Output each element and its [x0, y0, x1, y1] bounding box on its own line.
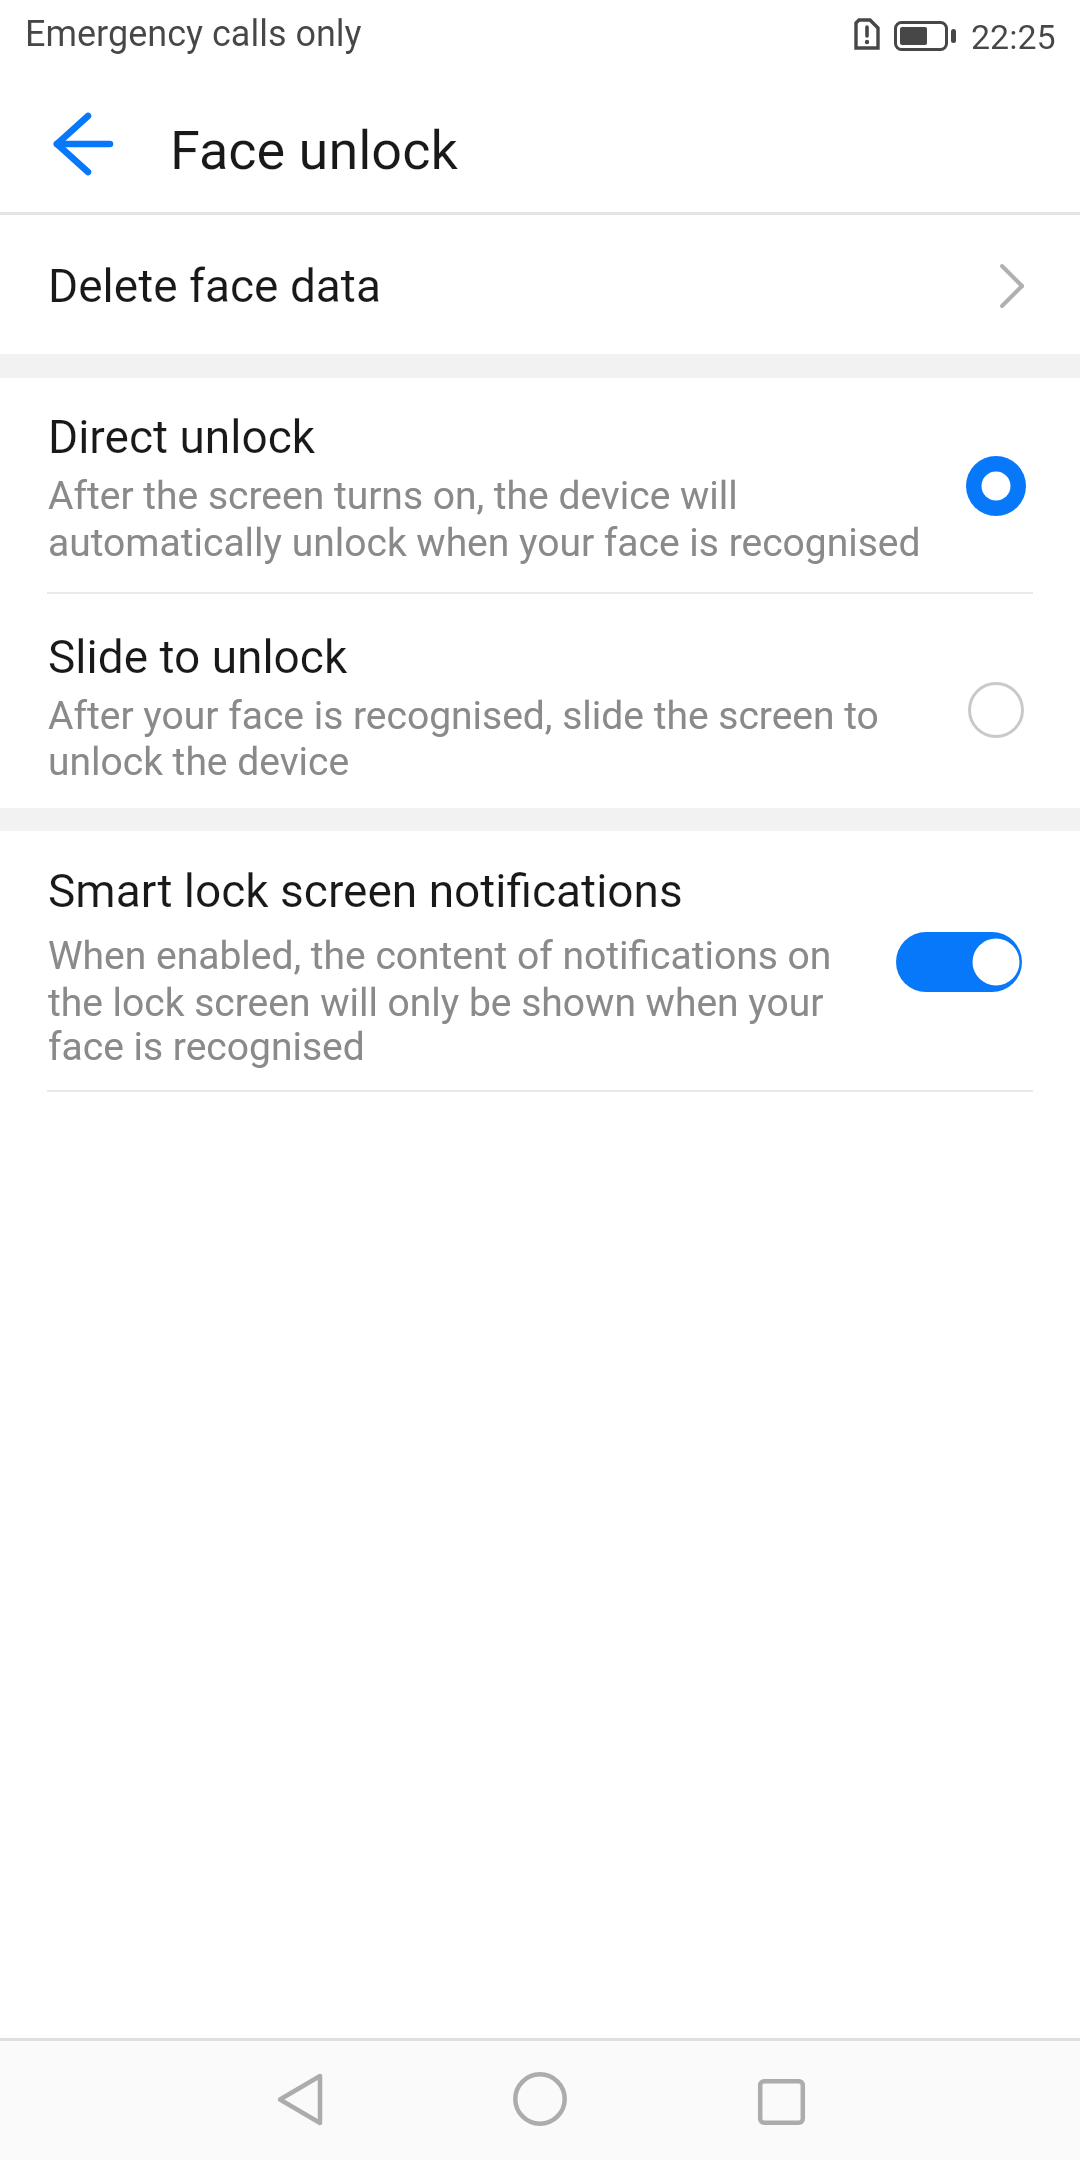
staticText: After the screen turns on, the device wi… — [48, 473, 738, 519]
staticText: Smart lock screen notifications — [48, 864, 683, 918]
staticText: face is recognised — [48, 1024, 365, 1070]
button[interactable]: Smart lock screen notifications — [0, 831, 1080, 1090]
staticText: unlock the device — [48, 739, 350, 785]
button[interactable] — [732, 2058, 832, 2138]
button[interactable]: Delete face data — [0, 215, 1080, 354]
staticText: Face unlock — [170, 119, 458, 182]
staticText: Slide to unlock — [48, 630, 348, 684]
staticText: the lock screen will only be shown when … — [48, 980, 824, 1026]
staticText: Delete face data — [48, 259, 381, 313]
staticText: Direct unlock — [48, 410, 316, 464]
button[interactable] — [250, 2058, 350, 2138]
button[interactable] — [490, 2058, 590, 2138]
button[interactable] — [896, 932, 1022, 992]
staticText: Emergency calls only — [25, 13, 362, 55]
staticText: 22:25 — [971, 17, 1056, 57]
button[interactable]: Direct unlock — [0, 378, 1080, 592]
button[interactable] — [33, 94, 137, 198]
button[interactable]: Slide to unlock — [0, 594, 1080, 808]
staticText: After your face is recognised, slide the… — [48, 693, 879, 739]
staticText: automatically unlock when your face is r… — [48, 520, 921, 566]
staticText: When enabled, the content of notificatio… — [48, 933, 832, 979]
